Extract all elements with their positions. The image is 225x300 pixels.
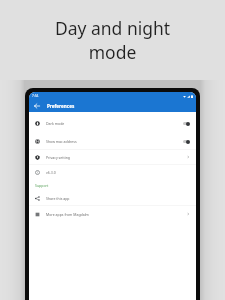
button[interactable]: Show mac address bbox=[29, 133, 196, 149]
button[interactable]: Privacy setting bbox=[29, 150, 196, 164]
staticText: 7:54 bbox=[32, 94, 39, 98]
staticText: Day and night mode bbox=[0, 16, 225, 64]
staticText: More apps from Magdalm bbox=[46, 212, 186, 217]
button[interactable]: Share this app bbox=[29, 191, 196, 205]
staticText: Show mac address bbox=[46, 139, 182, 144]
button[interactable]: Back bbox=[32, 101, 42, 111]
staticText: Privacy setting bbox=[46, 155, 186, 160]
staticText: v6.3.0 bbox=[46, 170, 190, 175]
staticText: Share this app bbox=[46, 196, 190, 201]
staticText: Preferences bbox=[47, 103, 75, 109]
button[interactable]: More apps from Magdalm bbox=[29, 206, 196, 222]
button[interactable]: Dark mode bbox=[29, 113, 196, 133]
staticText: Support bbox=[35, 183, 49, 188]
staticText: Dark mode bbox=[46, 121, 182, 126]
button[interactable]: v6.3.0 bbox=[29, 165, 196, 180]
